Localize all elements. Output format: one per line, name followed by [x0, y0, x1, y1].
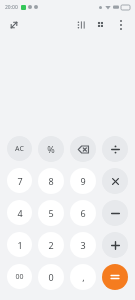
staticText: 4	[17, 207, 23, 219]
button[interactable]: ,	[70, 264, 96, 290]
staticText: 0	[48, 271, 54, 283]
staticText: 6	[80, 207, 86, 219]
staticText: 00	[15, 272, 24, 282]
button[interactable]: More options	[113, 17, 129, 33]
button[interactable]: %	[38, 136, 64, 162]
staticText: 3	[80, 239, 86, 251]
button[interactable]: 2	[38, 232, 64, 258]
staticText: 2	[48, 239, 54, 251]
button[interactable]	[102, 200, 128, 226]
button[interactable]: 5	[38, 200, 64, 226]
button[interactable]: 1	[7, 232, 32, 257]
button[interactable]: Backspace	[70, 136, 96, 162]
button[interactable]: AC	[7, 136, 32, 161]
button[interactable]: Expand	[6, 17, 22, 33]
button[interactable]	[102, 136, 128, 162]
button[interactable]	[102, 232, 128, 258]
button[interactable]: 9	[70, 168, 96, 194]
staticText: 20:00	[5, 4, 18, 11]
button[interactable]: 8	[38, 168, 64, 194]
staticText: 1	[17, 239, 23, 251]
staticText: ,	[82, 271, 85, 283]
button[interactable]	[102, 264, 128, 290]
button[interactable]	[102, 168, 128, 194]
staticText: %	[47, 143, 55, 155]
button[interactable]: 0	[38, 264, 64, 290]
button[interactable]: 6	[70, 200, 96, 226]
button[interactable]: Scientific mode	[93, 17, 109, 33]
staticText: 9	[80, 175, 86, 187]
staticText: 7	[17, 175, 23, 187]
staticText: 8	[48, 175, 54, 187]
staticText: AC	[15, 144, 24, 154]
button[interactable]: 4	[7, 200, 32, 225]
button[interactable]: 00	[7, 264, 32, 289]
button[interactable]: Unit converter	[73, 17, 89, 33]
button[interactable]: 3	[70, 232, 96, 258]
button[interactable]: 7	[7, 168, 32, 193]
staticText: 5	[48, 207, 54, 219]
